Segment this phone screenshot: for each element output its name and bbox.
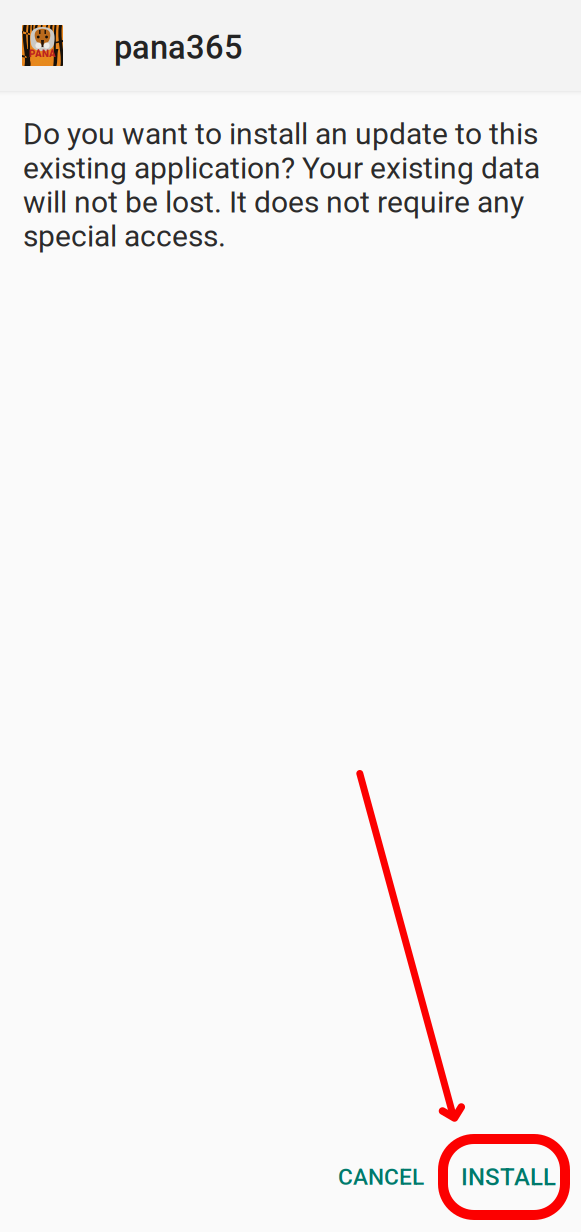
staticText: INSTALL — [461, 1163, 556, 1191]
button[interactable]: CANCEL — [319, 1149, 443, 1205]
staticText: Do you want to install an update to this… — [23, 117, 540, 253]
button[interactable]: INSTALL — [443, 1149, 574, 1205]
staticText: PANA — [29, 49, 56, 58]
staticText: CANCEL — [338, 1164, 424, 1190]
staticText: pana365 — [114, 28, 243, 67]
staticText: 365 — [33, 56, 51, 66]
